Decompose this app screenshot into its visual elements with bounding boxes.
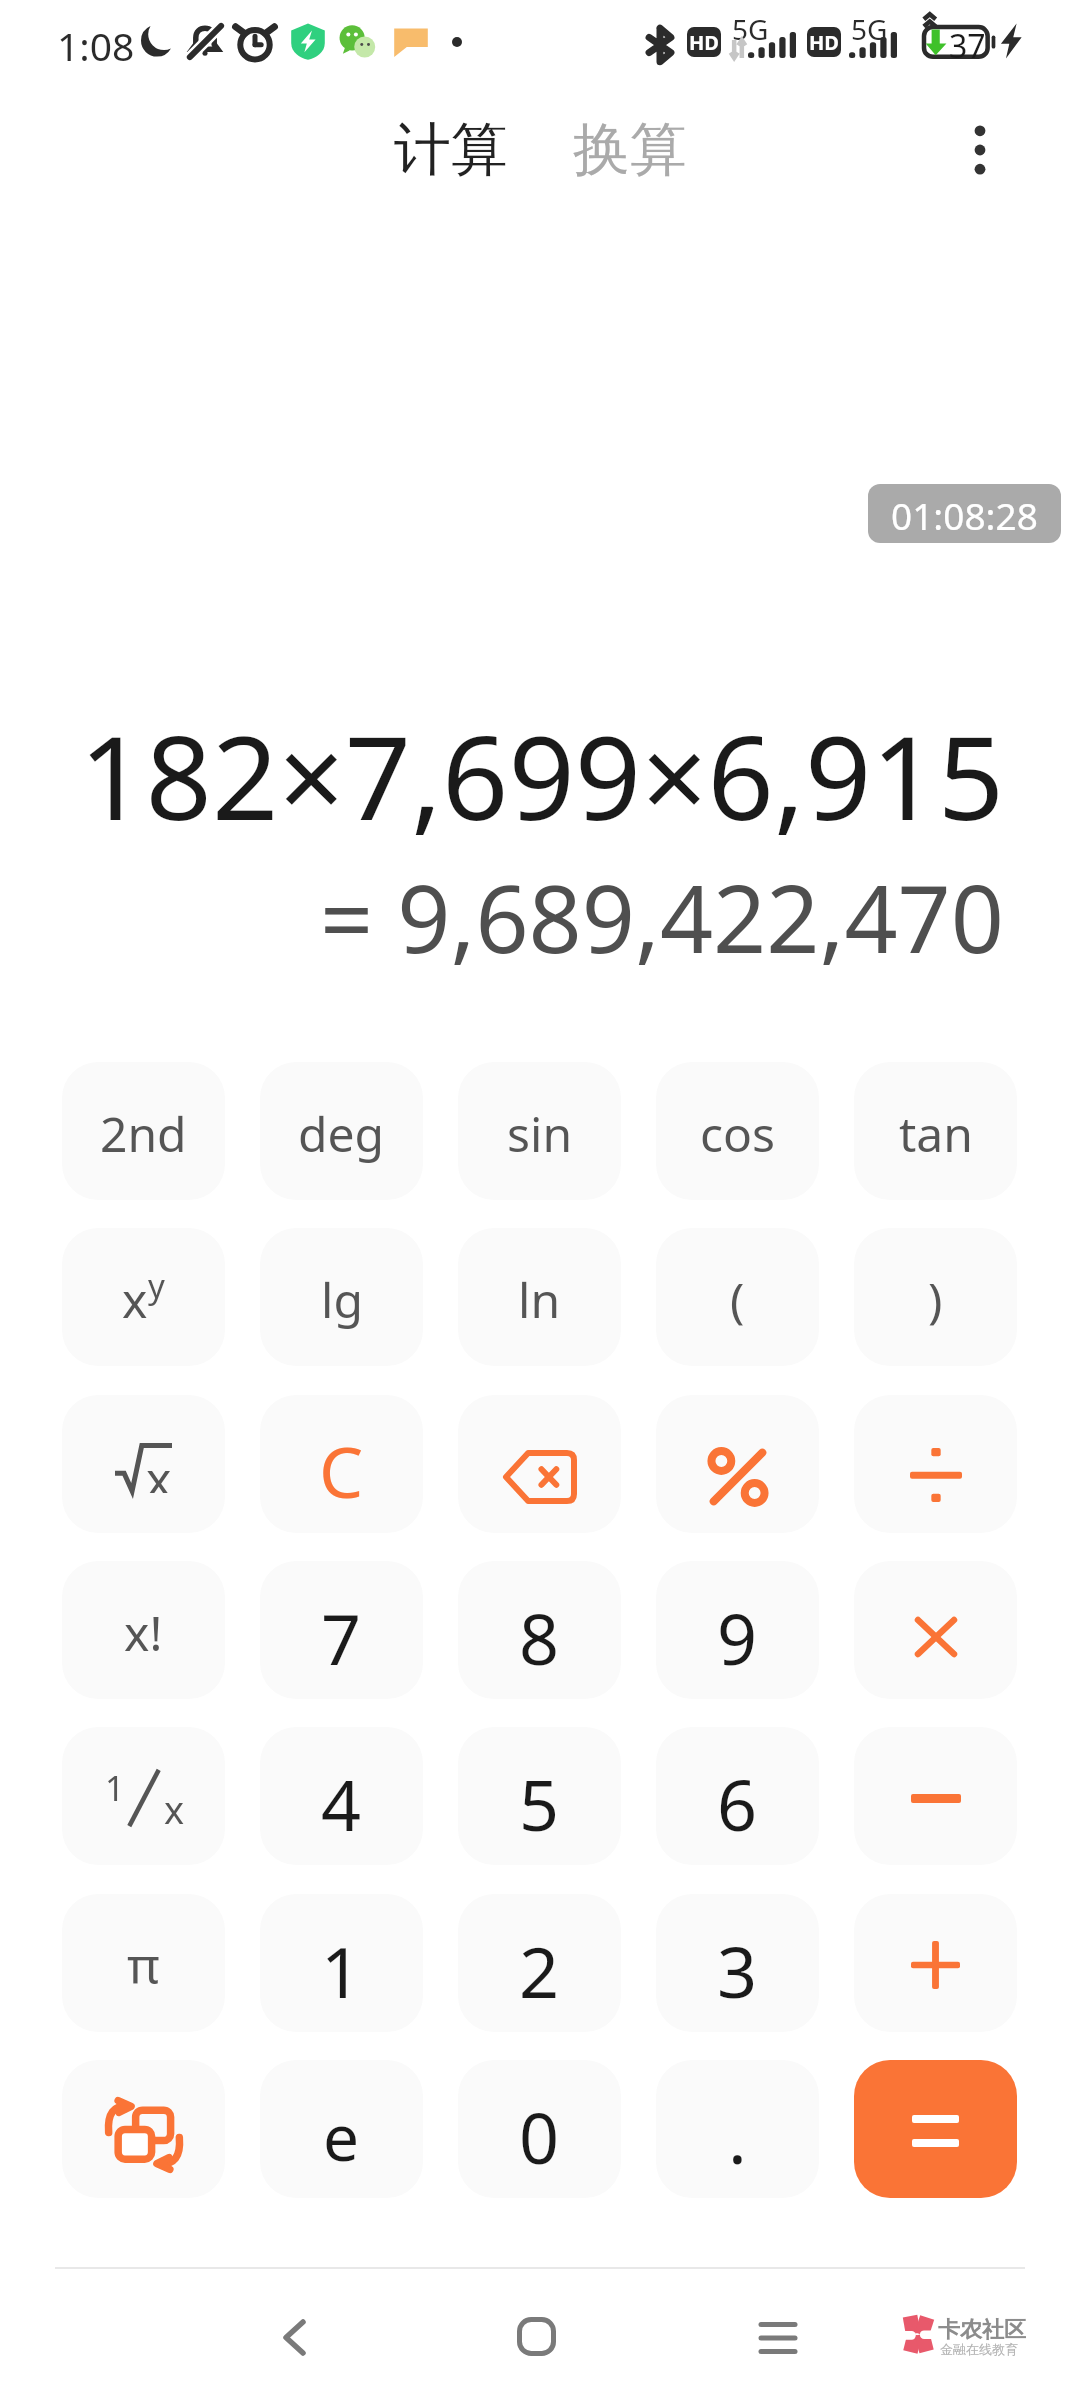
button[interactable]: Home: [476, 2269, 596, 2400]
staticText: (: [730, 1267, 745, 1332]
button[interactable]: 4: [260, 1727, 423, 1865]
staticText: .: [728, 2089, 747, 2184]
button[interactable]: Square root: [62, 1395, 225, 1533]
staticText: 5G: [851, 10, 888, 48]
staticText: 7: [321, 1590, 362, 1685]
button[interactable]: .: [656, 2060, 819, 2198]
button[interactable]: e: [260, 2060, 423, 2198]
staticText: sin: [507, 1101, 573, 1166]
button[interactable]: 9: [656, 1561, 819, 1699]
staticText: = 9,689,422,470: [319, 854, 1004, 981]
staticText: y: [148, 1263, 165, 1308]
button[interactable]: 6: [656, 1727, 819, 1865]
staticText: 1: [321, 1923, 362, 2018]
button[interactable]: Backspace: [458, 1395, 621, 1533]
staticText: 3: [717, 1923, 758, 2018]
button[interactable]: Plus: [854, 1894, 1017, 2032]
staticText: x: [122, 1267, 148, 1332]
staticText: π: [127, 1931, 160, 1999]
staticText: 卡农社区: [938, 2316, 1026, 2344]
staticText: ln: [518, 1267, 561, 1332]
staticText: HD: [689, 29, 719, 56]
button[interactable]: Percent: [656, 1395, 819, 1533]
staticText: x: [146, 1446, 172, 1493]
staticText: 182×7,699×6,915: [79, 696, 1004, 854]
staticText: C: [319, 1423, 364, 1518]
staticText: x: [164, 1783, 185, 1835]
button[interactable]: ln: [458, 1228, 621, 1366]
button[interactable]: deg: [260, 1062, 423, 1200]
staticText: e: [323, 2093, 360, 2180]
button[interactable]: lg: [260, 1228, 423, 1366]
staticText: ): [928, 1267, 943, 1332]
button[interactable]: Back: [234, 2269, 354, 2400]
staticText: 6: [717, 1756, 758, 1851]
staticText: 金融在线教育: [940, 2341, 1018, 2357]
button[interactable]: 3: [656, 1894, 819, 2032]
button[interactable]: 1: [260, 1894, 423, 2032]
button[interactable]: Divide: [854, 1395, 1017, 1533]
button[interactable]: Multiply: [854, 1561, 1017, 1699]
button[interactable]: 8: [458, 1561, 621, 1699]
staticText: 4: [321, 1756, 362, 1851]
button[interactable]: Minus: [854, 1727, 1017, 1865]
button[interactable]: More options: [942, 112, 1018, 188]
button[interactable]: 2: [458, 1894, 621, 2032]
staticText: deg: [298, 1101, 385, 1166]
button[interactable]: 计算: [384, 102, 518, 198]
button[interactable]: 1: [62, 1727, 225, 1865]
staticText: x!: [124, 1600, 163, 1665]
staticText: 9: [717, 1590, 758, 1685]
staticText: 8: [519, 1590, 560, 1685]
staticText: cos: [700, 1101, 776, 1166]
button[interactable]: Equals: [854, 2060, 1017, 2198]
staticText: 0: [519, 2089, 560, 2184]
staticText: 1:08: [57, 19, 135, 72]
button[interactable]: 换算: [563, 102, 697, 198]
button[interactable]: C: [260, 1395, 423, 1533]
button[interactable]: (: [656, 1228, 819, 1366]
button[interactable]: tan: [854, 1062, 1017, 1200]
staticText: 1: [105, 1765, 125, 1811]
button[interactable]: x!: [62, 1561, 225, 1699]
button[interactable]: 2nd: [62, 1062, 225, 1200]
staticText: HD: [809, 29, 839, 56]
staticText: 5: [519, 1756, 560, 1851]
button[interactable]: Convert: [62, 2060, 225, 2198]
button[interactable]: ): [854, 1228, 1017, 1366]
staticText: 2nd: [100, 1101, 187, 1166]
button[interactable]: sin: [458, 1062, 621, 1200]
button[interactable]: 5: [458, 1727, 621, 1865]
staticText: 换算: [573, 114, 687, 186]
button[interactable]: 0: [458, 2060, 621, 2198]
button[interactable]: Recents: [718, 2269, 838, 2400]
button[interactable]: 7: [260, 1561, 423, 1699]
staticText: 5G: [732, 10, 769, 48]
button[interactable]: π: [62, 1894, 225, 2032]
staticText: lg: [321, 1267, 363, 1332]
button[interactable]: x: [62, 1228, 225, 1366]
staticText: 01:08:28: [891, 490, 1038, 540]
staticText: 37: [949, 24, 986, 68]
staticText: 2: [519, 1923, 560, 2018]
button[interactable]: cos: [656, 1062, 819, 1200]
staticText: tan: [899, 1101, 973, 1166]
staticText: 计算: [394, 114, 508, 186]
